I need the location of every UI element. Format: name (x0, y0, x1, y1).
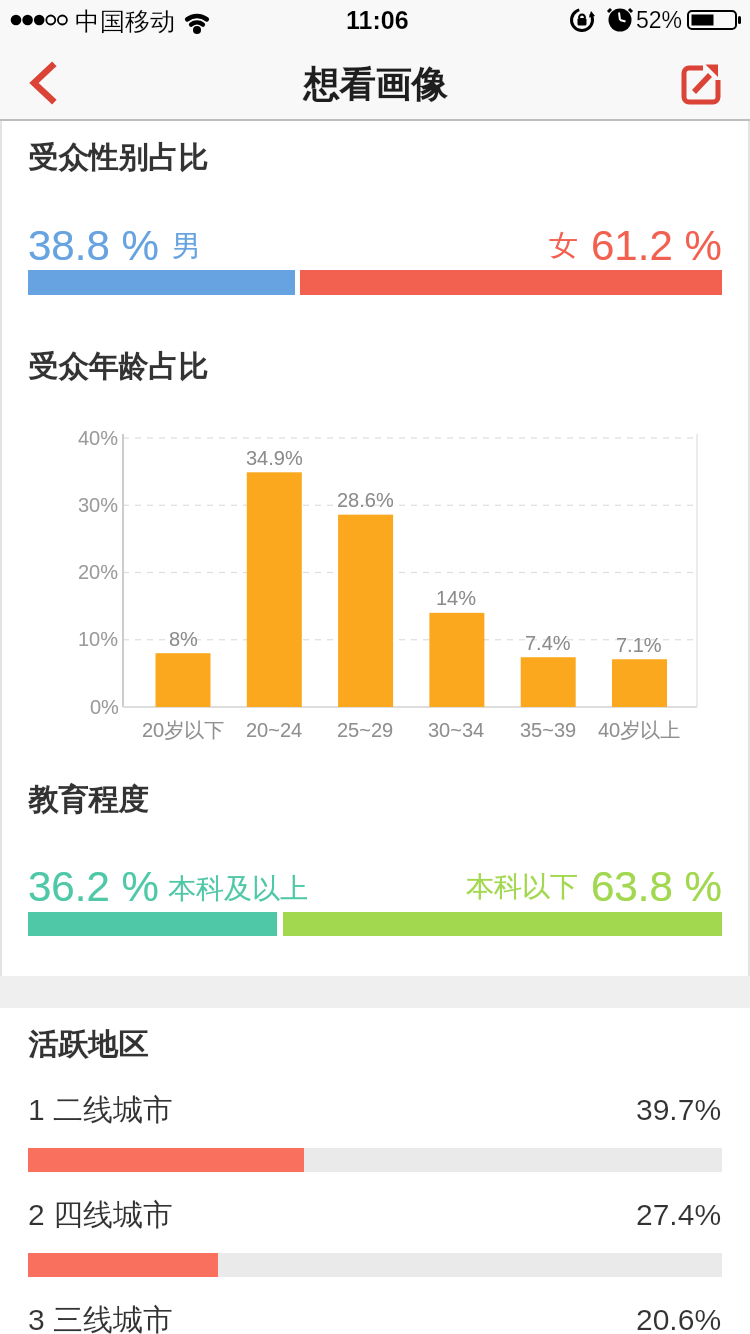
button[interactable] (10, 53, 70, 113)
staticText: 36.2 % (28, 863, 159, 910)
staticText: 20.6% (636, 1303, 722, 1334)
staticText: 男 (172, 228, 201, 265)
button[interactable]: 3 三线城市 (28, 1290, 722, 1334)
staticText: 52% (636, 7, 683, 33)
staticText: 25~29 (337, 719, 394, 741)
staticText: 本科以下 (466, 869, 578, 904)
staticText: 教育程度 (28, 781, 148, 819)
staticText: 38.8 % (28, 222, 159, 269)
staticText: 61.2 % (591, 222, 722, 269)
staticText: 2 四线城市 (28, 1196, 174, 1234)
staticText: 1 二线城市 (28, 1091, 174, 1129)
staticText: 中国移动 (75, 6, 175, 37)
staticText: 40岁以上 (598, 718, 681, 743)
staticText: 30~34 (428, 719, 485, 741)
staticText: 受众性别占比 (28, 139, 208, 177)
staticText: 本科及以上 (168, 871, 308, 906)
staticText: 35~39 (520, 719, 577, 741)
staticText: 39.7% (636, 1093, 722, 1127)
staticText: 20~24 (246, 719, 303, 741)
staticText: 14% (436, 587, 477, 609)
staticText: 3 三线城市 (28, 1301, 174, 1334)
staticText: 30% (78, 494, 119, 516)
staticText: 7.4% (525, 632, 571, 654)
staticText: 10% (78, 628, 119, 650)
staticText: 40% (78, 427, 119, 449)
staticText: 7.1% (616, 634, 662, 656)
button[interactable]: 1 二线城市 (28, 1080, 722, 1140)
staticText: 63.8 % (591, 863, 722, 910)
staticText: 受众年龄占比 (28, 348, 208, 386)
staticText: 0% (90, 696, 119, 718)
staticText: 11:06 (346, 6, 409, 34)
staticText: 20岁以下 (142, 718, 225, 743)
staticText: 28.6% (337, 489, 394, 511)
staticText: 想看画像 (303, 62, 447, 107)
button[interactable]: 2 四线城市 (28, 1185, 722, 1245)
staticText: 女 (549, 227, 578, 264)
staticText: 34.9% (246, 447, 303, 469)
button[interactable] (672, 55, 732, 111)
staticText: 20% (78, 561, 119, 583)
staticText: 8% (169, 628, 198, 650)
staticText: 27.4% (636, 1198, 722, 1232)
staticText: 活跃地区 (28, 1026, 148, 1064)
